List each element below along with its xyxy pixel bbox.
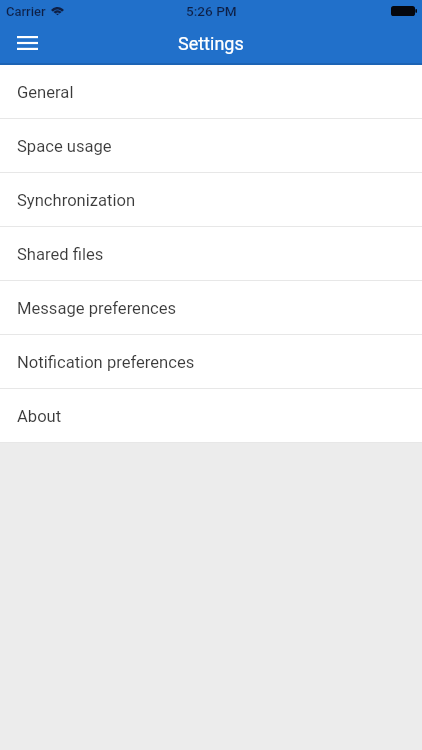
button[interactable]: About bbox=[0, 389, 422, 443]
staticText: 5:26 PM bbox=[186, 3, 237, 19]
button[interactable]: General bbox=[0, 65, 422, 119]
staticText: Notification preferences bbox=[17, 353, 195, 372]
staticText: Shared files bbox=[17, 245, 104, 264]
button[interactable]: Message preferences bbox=[0, 281, 422, 335]
button[interactable]: Notification preferences bbox=[0, 335, 422, 389]
staticText: Carrier bbox=[6, 4, 46, 19]
button[interactable]: Synchronization bbox=[0, 173, 422, 227]
button[interactable]: Shared files bbox=[0, 227, 422, 281]
button[interactable]: Open navigation menu bbox=[7, 24, 47, 64]
staticText: Message preferences bbox=[17, 299, 177, 318]
staticText: General bbox=[17, 83, 74, 102]
staticText: About bbox=[17, 407, 62, 426]
staticText: Space usage bbox=[17, 137, 112, 156]
button[interactable]: Space usage bbox=[0, 119, 422, 173]
staticText: Synchronization bbox=[17, 191, 136, 210]
staticText: Settings bbox=[178, 33, 244, 54]
